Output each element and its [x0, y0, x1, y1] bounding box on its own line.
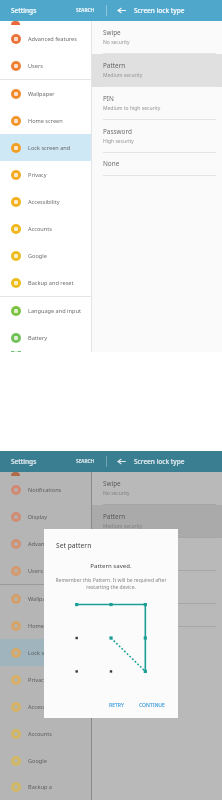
button[interactable]: Home screen — [0, 612, 91, 639]
staticText: Settings — [11, 457, 37, 466]
button[interactable]: Backup a — [0, 774, 91, 800]
staticText: None — [103, 159, 120, 168]
button[interactable]: Notifications — [0, 476, 91, 503]
button[interactable]: Backup and reset — [0, 269, 91, 296]
button[interactable]: Storage — [0, 351, 91, 352]
button[interactable]: RETRY — [104, 699, 129, 712]
staticText: Backup and reset — [28, 279, 74, 287]
staticText: Google — [28, 757, 47, 765]
button[interactable]: Privacy — [0, 666, 91, 693]
staticText: High security — [103, 138, 134, 145]
staticText: Google — [28, 252, 47, 260]
staticText: Advanced features — [28, 35, 77, 43]
button[interactable]: SEARCH — [73, 3, 98, 18]
staticText: PIN — [103, 94, 114, 103]
button[interactable]: Lock screen and security — [0, 639, 91, 666]
staticText: Advanced features — [28, 540, 77, 548]
staticText: No security — [103, 39, 130, 46]
button[interactable]: Users — [0, 52, 91, 79]
staticText: Accessibility — [28, 703, 60, 711]
staticText: Pattern — [103, 512, 126, 521]
staticText: Lock screen and security — [28, 144, 91, 152]
staticText: Pattern saved. — [44, 562, 178, 570]
button[interactable]: Accounts — [0, 215, 91, 242]
staticText: Medium security — [103, 523, 143, 530]
button[interactable]: SEARCH — [73, 454, 98, 469]
staticText: Users — [28, 62, 43, 70]
staticText: Home screen — [28, 622, 63, 630]
button[interactable]: Back — [115, 4, 128, 17]
button[interactable]: Battery — [0, 324, 91, 351]
staticText: Password — [103, 578, 132, 587]
staticText: Accounts — [28, 225, 52, 233]
button[interactable]: Pattern — [92, 505, 222, 538]
button[interactable]: Users — [0, 557, 91, 584]
button[interactable]: CONTINUE — [134, 699, 170, 712]
staticText: Set pattern — [56, 541, 92, 550]
staticText: Lock screen and security — [28, 649, 91, 657]
staticText: Swipe — [103, 479, 121, 488]
button[interactable]: Wallpaper — [0, 585, 91, 612]
button[interactable]: Accessibility — [0, 188, 91, 215]
staticText: Settings — [11, 6, 37, 15]
button[interactable]: Advanced features — [0, 530, 91, 557]
button[interactable]: Google — [0, 747, 91, 774]
button[interactable]: Back — [115, 455, 128, 468]
staticText: Swipe — [103, 28, 121, 37]
staticText: Privacy — [28, 676, 47, 684]
button[interactable]: Wallpaper — [0, 80, 91, 107]
staticText: Notifications — [28, 486, 62, 494]
staticText: Backup a — [28, 783, 52, 791]
button[interactable]: Password — [92, 120, 222, 153]
staticText: Wallpaper — [28, 595, 55, 603]
button[interactable]: Swipe — [92, 472, 222, 505]
staticText: High security — [103, 589, 134, 596]
staticText: Display — [28, 513, 48, 521]
staticText: Accounts — [28, 730, 52, 738]
staticText: Pattern — [103, 61, 126, 70]
staticText: Password — [103, 127, 132, 136]
button[interactable]: Display — [0, 503, 91, 530]
button[interactable]: None — [92, 153, 222, 176]
button[interactable]: PIN — [92, 87, 222, 120]
button[interactable]: Pattern — [92, 54, 222, 87]
staticText: No security — [103, 490, 130, 497]
staticText: Remember this Pattern. It will be requir… — [54, 577, 168, 591]
staticText: Privacy — [28, 171, 47, 179]
button[interactable]: Google — [0, 242, 91, 269]
staticText: Users — [28, 567, 43, 575]
staticText: Home screen — [28, 117, 63, 125]
button[interactable]: Password — [92, 571, 222, 604]
button[interactable]: Privacy — [0, 161, 91, 188]
staticText: RETRY — [109, 702, 124, 709]
button[interactable]: None — [92, 604, 222, 627]
button[interactable]: Swipe — [92, 21, 222, 54]
staticText: Wallpaper — [28, 90, 55, 98]
staticText: Accessibility — [28, 198, 60, 206]
button[interactable]: Advanced features — [0, 25, 91, 52]
staticText: Screen lock type — [134, 457, 185, 466]
button[interactable]: Lock screen and security — [0, 134, 91, 161]
staticText: Medium security — [103, 72, 143, 79]
staticText: SEARCH — [76, 7, 95, 14]
staticText: Language and input — [28, 307, 81, 315]
button[interactable]: Home screen — [0, 107, 91, 134]
staticText: CONTINUE — [139, 702, 165, 709]
staticText: SEARCH — [76, 458, 95, 465]
button[interactable]: Language and input — [0, 297, 91, 324]
staticText: Battery — [28, 334, 48, 342]
button[interactable]: PIN — [92, 538, 222, 571]
button[interactable]: Accounts — [0, 720, 91, 747]
button[interactable]: Accessibility — [0, 693, 91, 720]
staticText: Medium to high security — [103, 105, 161, 112]
staticText: Screen lock type — [134, 6, 185, 15]
